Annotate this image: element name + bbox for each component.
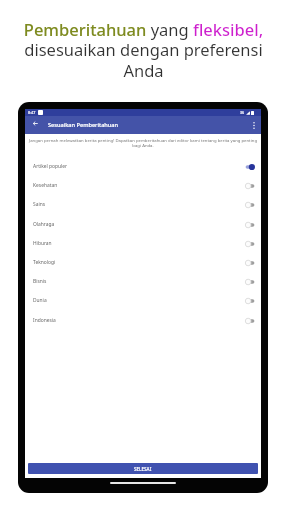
- staticText: SELESAI: [134, 466, 152, 472]
- staticText: Dunia: [33, 297, 47, 304]
- staticText: 36: [240, 110, 245, 115]
- button[interactable]: Toggle on: [245, 162, 255, 171]
- button[interactable]: Kesehatan: [25, 176, 261, 195]
- staticText: Bisnis: [33, 278, 47, 285]
- staticText: Sesuaikan Pemberitahuan: [48, 121, 119, 129]
- button[interactable]: Toggle off: [245, 200, 255, 209]
- staticText: Olahraga: [33, 221, 55, 228]
- button[interactable]: Teknologi: [25, 253, 261, 272]
- button[interactable]: Toggle off: [245, 277, 255, 286]
- staticText: Indonesia: [33, 317, 56, 324]
- button[interactable]: Hiburan: [25, 234, 261, 253]
- button[interactable]: Toggle off: [245, 316, 255, 325]
- staticText: Sains: [33, 201, 46, 208]
- button[interactable]: Toggle off: [245, 296, 255, 305]
- staticText: Artikel populer: [33, 163, 68, 170]
- button[interactable]: Indonesia: [25, 311, 261, 330]
- staticText: Jangan pernah melewatkan berita penting!…: [26, 137, 260, 148]
- button[interactable]: Toggle off: [245, 258, 255, 267]
- staticText: Pemberitahuan yang fleksibel, disesuaika…: [0, 18, 287, 82]
- button[interactable]: Back: [28, 116, 42, 130]
- button[interactable]: Dunia: [25, 291, 261, 310]
- button[interactable]: Toggle off: [245, 220, 255, 229]
- staticText: Teknologi: [33, 259, 56, 266]
- button[interactable]: More options: [248, 119, 260, 131]
- button[interactable]: Toggle off: [245, 239, 255, 248]
- button[interactable]: Bisnis: [25, 272, 261, 291]
- staticText: 8:47: [28, 110, 36, 115]
- button[interactable]: Olahraga: [25, 215, 261, 234]
- staticText: Kesehatan: [33, 182, 58, 189]
- button[interactable]: Sains: [25, 195, 261, 214]
- button[interactable]: Toggle off: [245, 181, 255, 190]
- staticText: Hiburan: [33, 240, 52, 247]
- button[interactable]: SELESAI: [28, 463, 258, 474]
- button[interactable]: Artikel populer: [25, 157, 261, 176]
